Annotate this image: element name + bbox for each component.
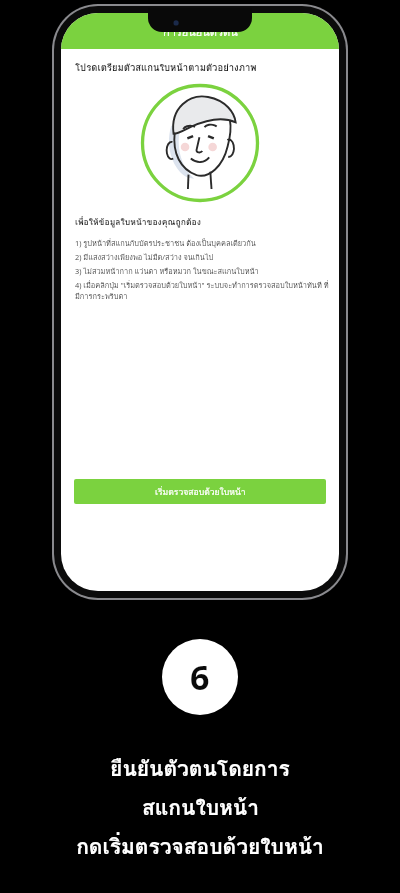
- staticText: ยืนยันตัวตนโดยการ: [110, 752, 290, 785]
- staticText: กดเริ่มตรวจสอบด้วยใบหน้า: [76, 830, 324, 863]
- staticText: เพื่อให้ข้อมูลใบหน้าของคุณถูกต้อง: [75, 215, 201, 229]
- staticText: 1) รูปหน้าที่สแกนกับบัตรประชาชน ต้องเป็น…: [75, 237, 256, 249]
- staticText: สแกนใบหน้า: [142, 791, 259, 824]
- staticText: 2) มีแสงสว่างเพียงพอ ไม่มืด/สว่าง จนเกิน…: [75, 251, 214, 263]
- staticText: 4) เมื่อคลิกปุ่ม "เริ่มตรวจสอบด้วยใบหน้า…: [75, 279, 329, 302]
- staticText: โปรดเตรียมตัวสแกนใบหน้าตามตัวอย่างภาพ: [75, 60, 257, 75]
- staticText: เริ่มตรวจสอบด้วยใบหน้า: [155, 485, 246, 499]
- staticText: 3) ไม่สวมหน้ากาก แว่นตา หรือหมวก ในขณะสแ…: [75, 265, 259, 277]
- button[interactable]: เริ่มตรวจสอบด้วยใบหน้า: [74, 479, 326, 504]
- staticText: 6: [190, 654, 210, 700]
- staticText: การยืนยันตัวตน: [163, 23, 238, 40]
